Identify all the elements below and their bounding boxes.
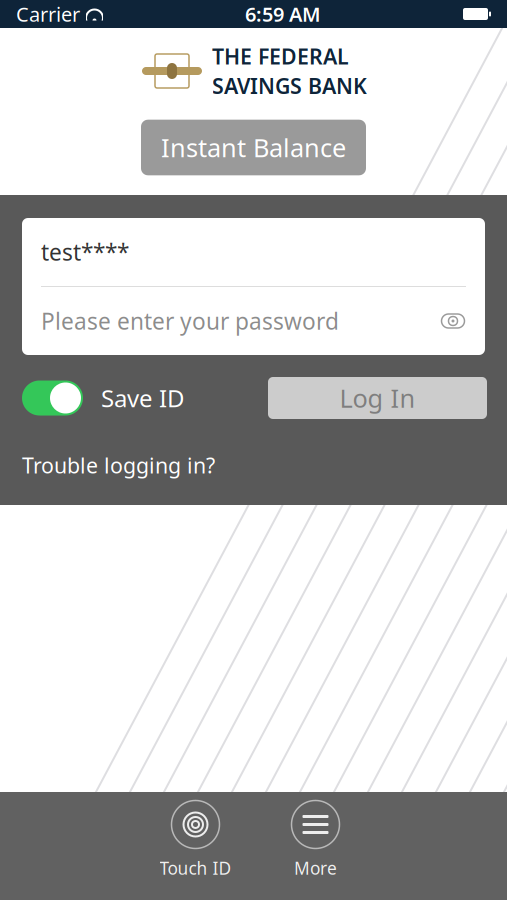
staticText: THE FEDERAL xyxy=(212,42,349,70)
staticText: Please enter your password xyxy=(41,306,339,336)
staticText: Trouble logging in? xyxy=(22,451,215,479)
staticText: test**** xyxy=(41,237,129,267)
button[interactable]: Save ID xyxy=(22,380,185,415)
staticText: SAVINGS BANK xyxy=(212,71,367,100)
button[interactable]: Log In xyxy=(268,377,487,419)
button[interactable]: test**** xyxy=(41,218,466,286)
staticText: 6:59 AM xyxy=(245,1,321,27)
staticText: Instant Balance xyxy=(161,131,346,164)
staticText: More xyxy=(294,856,337,879)
button[interactable]: Trouble logging in? xyxy=(22,451,215,479)
button[interactable]: Instant Balance xyxy=(141,120,366,175)
button[interactable]: Please enter your password xyxy=(41,287,466,355)
button[interactable]: Touch ID xyxy=(135,797,255,883)
staticText: Log In xyxy=(339,381,415,415)
staticText: Touch ID xyxy=(159,856,231,879)
button[interactable]: More xyxy=(255,797,375,883)
staticText: Save ID xyxy=(101,382,185,414)
staticText: Carrier xyxy=(16,1,80,27)
